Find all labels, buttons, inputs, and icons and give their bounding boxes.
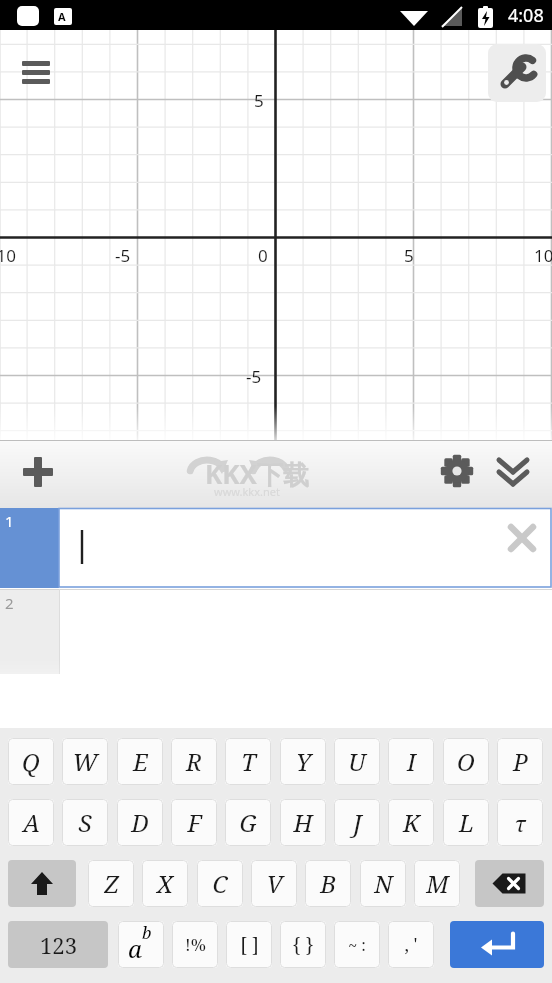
button[interactable]: F	[171, 799, 217, 846]
button[interactable]: Exponent	[118, 921, 164, 968]
button[interactable]: M	[414, 860, 460, 907]
staticText: -5	[115, 244, 131, 267]
button[interactable]: Graph settings	[488, 44, 546, 102]
button[interactable]: τ	[497, 799, 543, 846]
staticText: !%	[185, 933, 206, 956]
button[interactable]: E	[117, 738, 163, 785]
staticText: { }	[292, 932, 314, 958]
button[interactable]: C	[197, 860, 243, 907]
staticText: C	[212, 867, 228, 900]
button[interactable]: 2	[0, 590, 552, 674]
button[interactable]: S	[62, 799, 108, 846]
button[interactable]: I	[388, 738, 434, 785]
staticText: S	[78, 806, 92, 839]
staticText: 10	[534, 244, 552, 267]
button[interactable]: Add expression	[13, 447, 63, 497]
button[interactable]: D	[117, 799, 163, 846]
staticText: Q	[22, 745, 40, 778]
staticText: T	[241, 745, 256, 778]
button[interactable]: X	[142, 860, 188, 907]
staticText: Z	[104, 867, 119, 900]
button[interactable]: { }	[280, 921, 326, 968]
staticText: I	[407, 745, 416, 778]
staticText: 5	[404, 244, 414, 267]
staticText: τ	[514, 808, 526, 838]
staticText: -5	[246, 365, 262, 388]
staticText: 1	[5, 511, 14, 531]
button[interactable]: W	[62, 738, 108, 785]
button[interactable]: 1	[0, 508, 552, 588]
button[interactable]: ~ :	[334, 921, 380, 968]
staticText: J	[353, 806, 362, 839]
button[interactable]: O	[443, 738, 489, 785]
staticText: K	[403, 806, 420, 839]
staticText: D	[131, 806, 149, 839]
staticText: Y	[296, 745, 311, 778]
staticText: [ ]	[240, 932, 259, 958]
button[interactable]: K	[388, 799, 434, 846]
staticText: L	[459, 806, 474, 839]
staticText: A	[58, 9, 66, 24]
button[interactable]: Z	[88, 860, 134, 907]
staticText: H	[293, 806, 313, 839]
staticText: 123	[40, 930, 77, 960]
button[interactable]: G	[225, 799, 271, 846]
button[interactable]: V	[251, 860, 297, 907]
staticText: KKX下载	[205, 456, 309, 492]
staticText: U	[348, 745, 366, 778]
button[interactable]: [ ]	[226, 921, 272, 968]
button[interactable]: B	[305, 860, 351, 907]
staticText: b	[142, 921, 152, 944]
button[interactable]: H	[280, 799, 326, 846]
staticText: E	[133, 745, 148, 778]
staticText: 2	[5, 593, 14, 613]
staticText: W	[72, 745, 98, 778]
staticText: 0	[258, 244, 268, 267]
staticText: O	[457, 745, 475, 778]
button[interactable]: Q	[8, 738, 54, 785]
staticText: 4:08	[508, 3, 544, 28]
button[interactable]: P	[497, 738, 543, 785]
button[interactable]: Enter	[450, 921, 544, 968]
staticText: P	[513, 745, 528, 778]
button[interactable]: R	[171, 738, 217, 785]
staticText: B	[320, 867, 336, 900]
staticText: ~ :	[348, 934, 366, 956]
button[interactable]: Menu	[14, 52, 58, 96]
button[interactable]: L	[443, 799, 489, 846]
staticText: , '	[404, 932, 418, 957]
button[interactable]: Delete expression	[500, 516, 544, 560]
button[interactable]: J	[334, 799, 380, 846]
staticText: a	[128, 932, 142, 965]
staticText: R	[186, 745, 202, 778]
staticText: F	[187, 806, 202, 839]
button[interactable]: U	[334, 738, 380, 785]
button[interactable]: T	[225, 738, 271, 785]
staticText: 5	[254, 89, 264, 112]
button[interactable]: A	[8, 799, 54, 846]
button[interactable]: Backspace	[475, 860, 544, 907]
button[interactable]: N	[360, 860, 406, 907]
staticText: V	[266, 867, 283, 900]
staticText: A	[23, 806, 40, 839]
staticText: M	[426, 867, 449, 900]
staticText: www.kkx.net	[214, 484, 280, 499]
button[interactable]: , '	[388, 921, 434, 968]
button[interactable]: !%	[172, 921, 218, 968]
button[interactable]: 123	[8, 921, 108, 968]
staticText: G	[239, 806, 257, 839]
staticText: X	[157, 867, 173, 900]
button[interactable]: Shift	[8, 860, 76, 907]
button[interactable]: Y	[280, 738, 326, 785]
button[interactable]: Settings	[432, 447, 482, 497]
staticText: N	[374, 867, 393, 900]
staticText: -10	[0, 244, 16, 267]
button[interactable]: Collapse keypad	[488, 447, 538, 497]
